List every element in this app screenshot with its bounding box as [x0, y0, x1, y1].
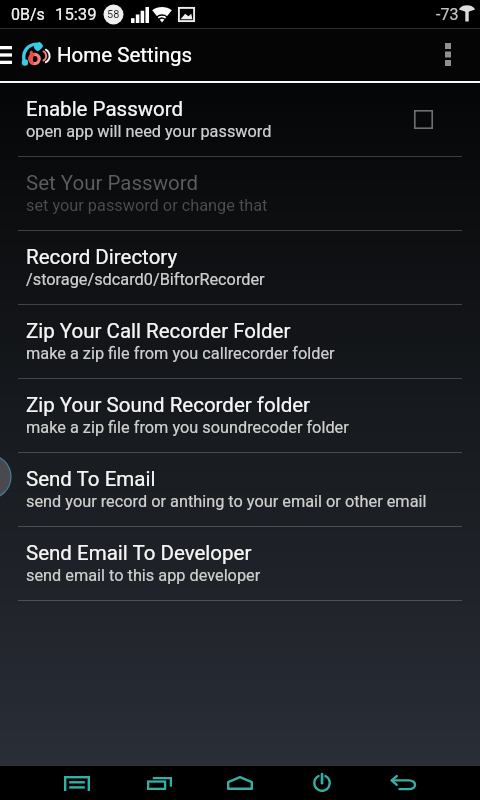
- staticText: 15:39: [55, 5, 97, 25]
- button[interactable]: Home: [208, 766, 272, 800]
- staticText: make a zip file from you soundrecoder fo…: [26, 418, 349, 437]
- staticText: send email to this app developer: [26, 566, 261, 585]
- button[interactable]: Power: [290, 766, 354, 800]
- button[interactable]: Record Directory: [0, 231, 480, 305]
- button[interactable]: Send Email To Developer: [0, 527, 480, 601]
- staticText: /storage/sdcard0/BiftorRecorder: [26, 270, 265, 289]
- staticText: open app will need your password: [26, 122, 272, 141]
- button[interactable]: Set Your Password: [0, 157, 480, 231]
- staticText: -73: [436, 5, 459, 24]
- staticText: 58: [107, 8, 120, 21]
- staticText: Record Directory: [26, 245, 178, 269]
- staticText: Enable Password: [26, 97, 184, 121]
- staticText: 0B/s: [11, 5, 45, 24]
- button[interactable]: Keyboard: [45, 766, 109, 800]
- staticText: set your password or change that: [26, 196, 268, 215]
- staticText: make a zip file from you callrecorder fo…: [26, 344, 335, 363]
- button[interactable]: Open navigation drawer: [0, 28, 14, 81]
- button[interactable]: Send To Email: [0, 453, 480, 527]
- button[interactable]: More options: [428, 28, 468, 81]
- staticText: send your record or anthing to your emai…: [26, 492, 427, 511]
- staticText: Send Email To Developer: [26, 541, 252, 565]
- staticText: Zip Your Sound Recorder folder: [26, 393, 311, 417]
- button[interactable]: Recent apps: [127, 766, 191, 800]
- button[interactable]: Zip Your Sound Recorder folder: [0, 379, 480, 453]
- staticText: Set Your Password: [26, 171, 199, 195]
- button[interactable]: Back: [371, 766, 435, 800]
- staticText: Zip Your Call Recorder Folder: [26, 319, 291, 343]
- button[interactable]: Zip Your Call Recorder Folder: [0, 305, 480, 379]
- staticText: Home Settings: [57, 43, 193, 67]
- staticText: Send To Email: [26, 467, 156, 491]
- button[interactable]: Enable Password: [0, 83, 480, 157]
